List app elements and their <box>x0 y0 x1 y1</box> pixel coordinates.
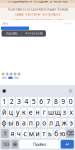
button[interactable]: 3 <box>16 97 22 106</box>
staticText: ь <box>48 129 52 138</box>
button[interactable]: ш <box>48 108 54 116</box>
staticText: 4 <box>24 97 28 106</box>
button[interactable]: AutoFill password <box>2 89 6 93</box>
button[interactable]: ⇧ <box>1 129 9 138</box>
staticText: р <box>35 118 39 127</box>
staticText: политика <box>64 23 72 25</box>
button[interactable]: 0 <box>67 97 74 106</box>
button[interactable]: ф <box>1 118 7 127</box>
button[interactable]: ц <box>8 108 13 116</box>
staticText: к <box>22 108 26 116</box>
button[interactable]: з <box>61 108 67 116</box>
button[interactable]: Заказать бесплатную консультацию <box>14 13 60 16</box>
staticText: оставьте заявку и мы свяжемся с вами <box>12 18 63 21</box>
staticText: ю <box>60 129 65 138</box>
button[interactable]: Like <box>2 77 7 79</box>
button[interactable]: Comment <box>14 77 19 79</box>
staticText: 5 <box>32 97 36 106</box>
staticText: ↵ <box>65 141 69 147</box>
staticText: ПРОДВИЖЕНИЕ И ПРОДАЖИ В ИНТЕРНЕТЕ <box>8 0 67 3</box>
button[interactable]: д <box>55 118 60 127</box>
button[interactable]: 2 <box>9 97 15 106</box>
button[interactable]: Share <box>8 77 13 79</box>
staticText: 8 <box>54 97 58 106</box>
staticText: ц <box>9 108 13 116</box>
staticText: 7 <box>47 97 51 106</box>
button[interactable]: ч <box>16 129 21 138</box>
staticText: ч <box>17 129 21 138</box>
button[interactable]: й <box>1 108 7 116</box>
staticText: м <box>29 129 34 138</box>
button[interactable]: Dismiss keyboard <box>68 89 72 93</box>
button[interactable]: ⌫ <box>66 129 74 138</box>
button[interactable]: т <box>41 129 46 138</box>
button[interactable]: ⊕ <box>11 140 18 149</box>
staticText: л <box>49 118 53 127</box>
staticText: Вырезать <box>6 32 17 35</box>
button[interactable]: е <box>28 108 34 116</box>
button[interactable]: ↵ <box>61 140 74 149</box>
staticText: 3 <box>17 97 21 106</box>
staticText: п <box>29 118 33 127</box>
staticText: Копировать <box>25 32 42 35</box>
button[interactable]: а <box>21 118 27 127</box>
staticText: в <box>15 118 19 127</box>
button[interactable]: щ <box>55 108 60 116</box>
staticText: г <box>43 108 46 116</box>
staticText: ⇧ <box>3 130 7 137</box>
button[interactable]: г <box>41 108 47 116</box>
staticText: ⊕ <box>13 141 17 147</box>
staticText: ф <box>1 118 6 127</box>
button[interactable]: м <box>29 129 34 138</box>
button[interactable]: ж <box>61 118 67 127</box>
staticText: б <box>54 129 58 138</box>
staticText: й <box>2 108 6 116</box>
button[interactable]: п <box>28 118 34 127</box>
button[interactable]: я <box>10 129 15 138</box>
button[interactable]: 6 <box>38 97 44 106</box>
button[interactable]: э <box>68 118 74 127</box>
button[interactable]: ь <box>47 129 53 138</box>
button[interactable]: 1 <box>1 97 7 106</box>
staticText: х <box>69 108 72 116</box>
staticText: э <box>69 118 72 127</box>
staticText: Комплексное продвижение вашего бизнеса <box>7 8 67 11</box>
button[interactable]: 5 <box>31 97 37 106</box>
staticText: о <box>42 118 46 127</box>
staticText: и <box>35 129 39 138</box>
button[interactable]: и <box>35 129 40 138</box>
staticText: Пробел <box>33 142 46 147</box>
button[interactable]: л <box>48 118 54 127</box>
button[interactable]: Вырезать <box>1 30 21 37</box>
button[interactable]: ю <box>60 129 65 138</box>
button[interactable]: н <box>35 108 40 116</box>
button[interactable]: у <box>15 108 20 116</box>
button[interactable]: к <box>21 108 27 116</box>
button[interactable]: о <box>41 118 47 127</box>
button[interactable]: 7 <box>45 97 52 106</box>
button[interactable]: 4 <box>23 97 30 106</box>
button[interactable]: Копировать <box>22 30 46 37</box>
staticText: н <box>35 108 39 116</box>
button[interactable]: 8 <box>53 97 59 106</box>
button[interactable]: ы <box>8 118 13 127</box>
button[interactable]: х <box>68 108 74 116</box>
staticText: д <box>56 118 60 127</box>
button[interactable]: б <box>54 129 59 138</box>
button[interactable]: 9 <box>60 97 66 106</box>
button[interactable]: с <box>22 129 28 138</box>
button[interactable]: в <box>15 118 20 127</box>
staticText: 9 <box>61 97 65 106</box>
button[interactable]: 123 <box>1 140 10 149</box>
staticText: Заказать бесплатную консультацию <box>14 13 60 16</box>
staticText: 0 <box>69 97 73 106</box>
button[interactable]: Пробел <box>19 140 60 149</box>
button[interactable]: р <box>35 118 40 127</box>
staticText: е <box>29 108 33 116</box>
staticText: ы <box>8 118 13 127</box>
